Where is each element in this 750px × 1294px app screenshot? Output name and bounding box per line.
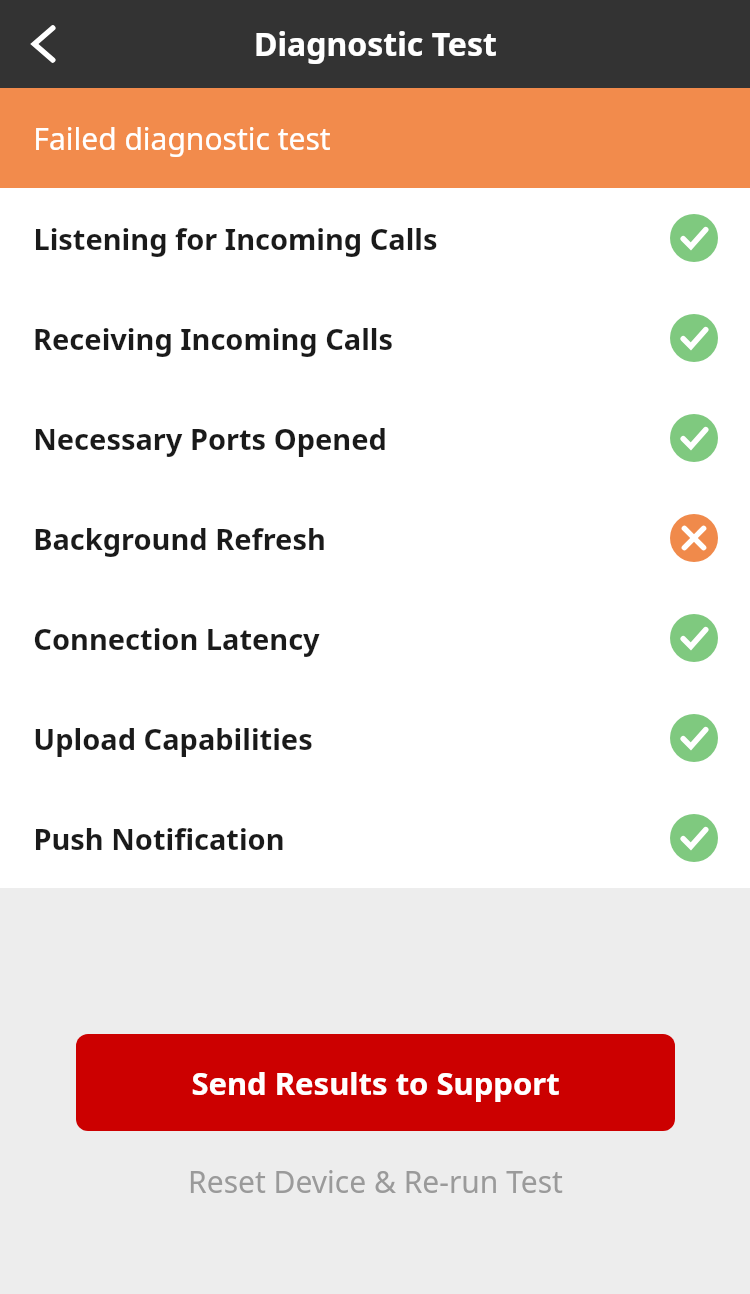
staticText: Failed diagnostic test [33, 118, 331, 159]
staticText: Send Results to Support [191, 1062, 560, 1104]
button[interactable]: Back [0, 0, 88, 88]
staticText: Connection Latency [33, 619, 320, 658]
staticText: Upload Capabilities [33, 719, 313, 758]
button[interactable]: Connection Latency [0, 588, 750, 688]
other: Passed [670, 414, 718, 462]
button[interactable]: Background Refresh [0, 488, 750, 588]
other: Passed [670, 614, 718, 662]
staticText: Listening for Incoming Calls [33, 219, 438, 258]
other: Passed [670, 214, 718, 262]
staticText: Background Refresh [33, 519, 326, 558]
button[interactable]: Listening for Incoming Calls [0, 188, 750, 288]
button[interactable]: Send Results to Support [76, 1034, 675, 1131]
staticText: Reset Device & Re-run Test [188, 1161, 563, 1202]
staticText: Necessary Ports Opened [33, 419, 387, 458]
other: Passed [670, 814, 718, 862]
button[interactable]: Upload Capabilities [0, 688, 750, 788]
staticText: Diagnostic Test [254, 22, 497, 66]
button[interactable]: Reset Device & Re-run Test [0, 1131, 750, 1231]
staticText: Receiving Incoming Calls [33, 319, 393, 358]
other: Passed [670, 714, 718, 762]
staticText: Push Notification [33, 819, 285, 858]
other: Passed [670, 314, 718, 362]
button[interactable]: Necessary Ports Opened [0, 388, 750, 488]
button[interactable]: Push Notification [0, 788, 750, 888]
button[interactable]: Receiving Incoming Calls [0, 288, 750, 388]
other: Failed [670, 514, 718, 562]
